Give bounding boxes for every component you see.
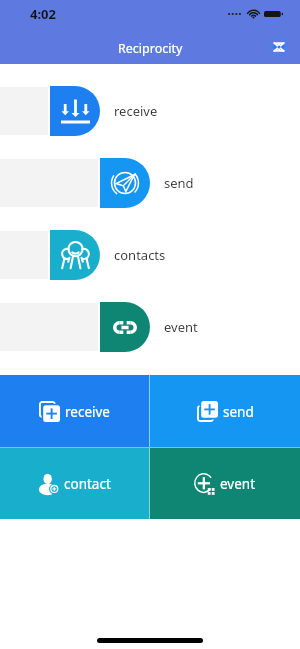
button[interactable]: Network	[266, 34, 292, 60]
button[interactable]: contact	[0, 448, 149, 519]
button[interactable]: event	[0, 302, 300, 352]
staticText: receive	[114, 102, 158, 120]
button[interactable]: receive	[0, 86, 300, 136]
staticText: event	[164, 318, 198, 336]
button[interactable]: contacts	[0, 230, 300, 280]
staticText: receive	[65, 403, 110, 421]
staticText: 4:02	[30, 5, 56, 23]
staticText: contacts	[114, 246, 166, 264]
button[interactable]: receive	[0, 375, 149, 447]
staticText: Reciprocity	[118, 40, 183, 57]
staticText: send	[223, 403, 254, 421]
button[interactable]: event	[150, 448, 300, 519]
staticText: send	[164, 174, 194, 192]
button[interactable]: send	[150, 375, 300, 447]
staticText: event	[220, 475, 256, 493]
staticText: contact	[64, 475, 111, 493]
button[interactable]: send	[0, 158, 300, 208]
